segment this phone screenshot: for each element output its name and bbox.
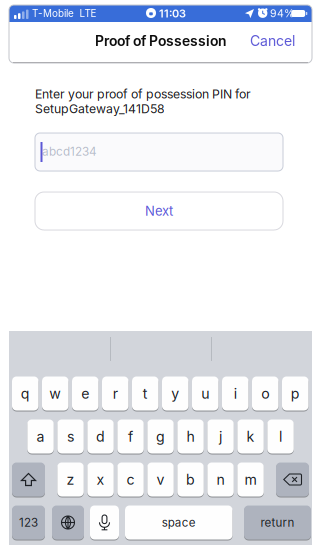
staticText: j (219, 428, 222, 445)
button[interactable]: s (57, 419, 84, 454)
staticText: Enter your proof of possession PIN for S… (35, 86, 251, 116)
staticText: r (113, 385, 118, 402)
button[interactable]: g (147, 419, 174, 454)
staticText: Cancel (250, 32, 295, 49)
staticText: b (186, 471, 195, 488)
staticText: z (66, 471, 74, 488)
button[interactable]: u (192, 376, 218, 411)
staticText: return (260, 515, 294, 529)
button[interactable]: return (244, 505, 311, 540)
staticText: f (128, 428, 133, 445)
staticText: i (234, 385, 237, 402)
staticText: h (187, 428, 195, 445)
button[interactable]: Dictate (90, 505, 119, 540)
staticText: 11:03 (159, 7, 186, 20)
button[interactable]: c (117, 462, 144, 497)
button[interactable]: Delete (276, 462, 309, 497)
staticText: 123 (19, 515, 38, 529)
staticText: w (49, 385, 61, 402)
staticText: u (201, 385, 209, 402)
staticText: t (143, 385, 148, 402)
staticText: k (247, 428, 255, 445)
staticText: g (156, 428, 165, 445)
staticText: c (126, 471, 134, 488)
button[interactable]: b (177, 462, 204, 497)
button[interactable]: m (237, 462, 264, 497)
staticText: n (217, 471, 225, 488)
button[interactable]: l (267, 419, 294, 454)
button[interactable]: a (27, 419, 54, 454)
button[interactable]: space (125, 505, 232, 540)
staticText: a (36, 428, 44, 445)
staticText: v (157, 471, 165, 488)
staticText: 94% (270, 7, 294, 20)
staticText: o (261, 385, 269, 402)
staticText: T-Mobile (32, 7, 74, 19)
staticText: m (245, 471, 257, 488)
button[interactable]: k (237, 419, 264, 454)
button[interactable]: h (177, 419, 204, 454)
staticText: d (96, 428, 105, 445)
staticText: Next (145, 203, 173, 219)
staticText: e (81, 385, 89, 402)
staticText: p (291, 385, 300, 402)
button[interactable]: d (87, 419, 114, 454)
staticText: x (96, 471, 104, 488)
staticText: LTE (79, 7, 96, 19)
button[interactable]: p (282, 376, 308, 411)
button[interactable]: Shift (12, 462, 45, 497)
button[interactable]: Next (35, 192, 283, 230)
staticText: Proof of Possession (95, 33, 226, 49)
staticText: space (162, 515, 196, 529)
button[interactable]: r (102, 376, 128, 411)
button[interactable]: v (147, 462, 174, 497)
button[interactable]: Proof of possession PIN (35, 133, 283, 171)
button[interactable]: j (207, 419, 234, 454)
button[interactable]: o (252, 376, 278, 411)
button[interactable]: t (132, 376, 158, 411)
button[interactable]: f (117, 419, 144, 454)
button[interactable]: y (162, 376, 188, 411)
staticText: s (67, 428, 74, 445)
button[interactable]: w (42, 376, 68, 411)
button[interactable]: z (57, 462, 84, 497)
staticText: y (171, 385, 179, 402)
staticText: l (279, 428, 282, 445)
button[interactable]: e (72, 376, 98, 411)
staticText: abcd1234 (42, 144, 97, 159)
button[interactable]: Cancel (242, 20, 312, 61)
staticText: q (21, 385, 30, 402)
button[interactable]: Numbers (12, 505, 45, 540)
button[interactable]: x (87, 462, 114, 497)
button[interactable]: Next keyboard (52, 505, 84, 540)
button[interactable]: i (222, 376, 248, 411)
button[interactable]: n (207, 462, 234, 497)
button[interactable]: q (12, 376, 38, 411)
